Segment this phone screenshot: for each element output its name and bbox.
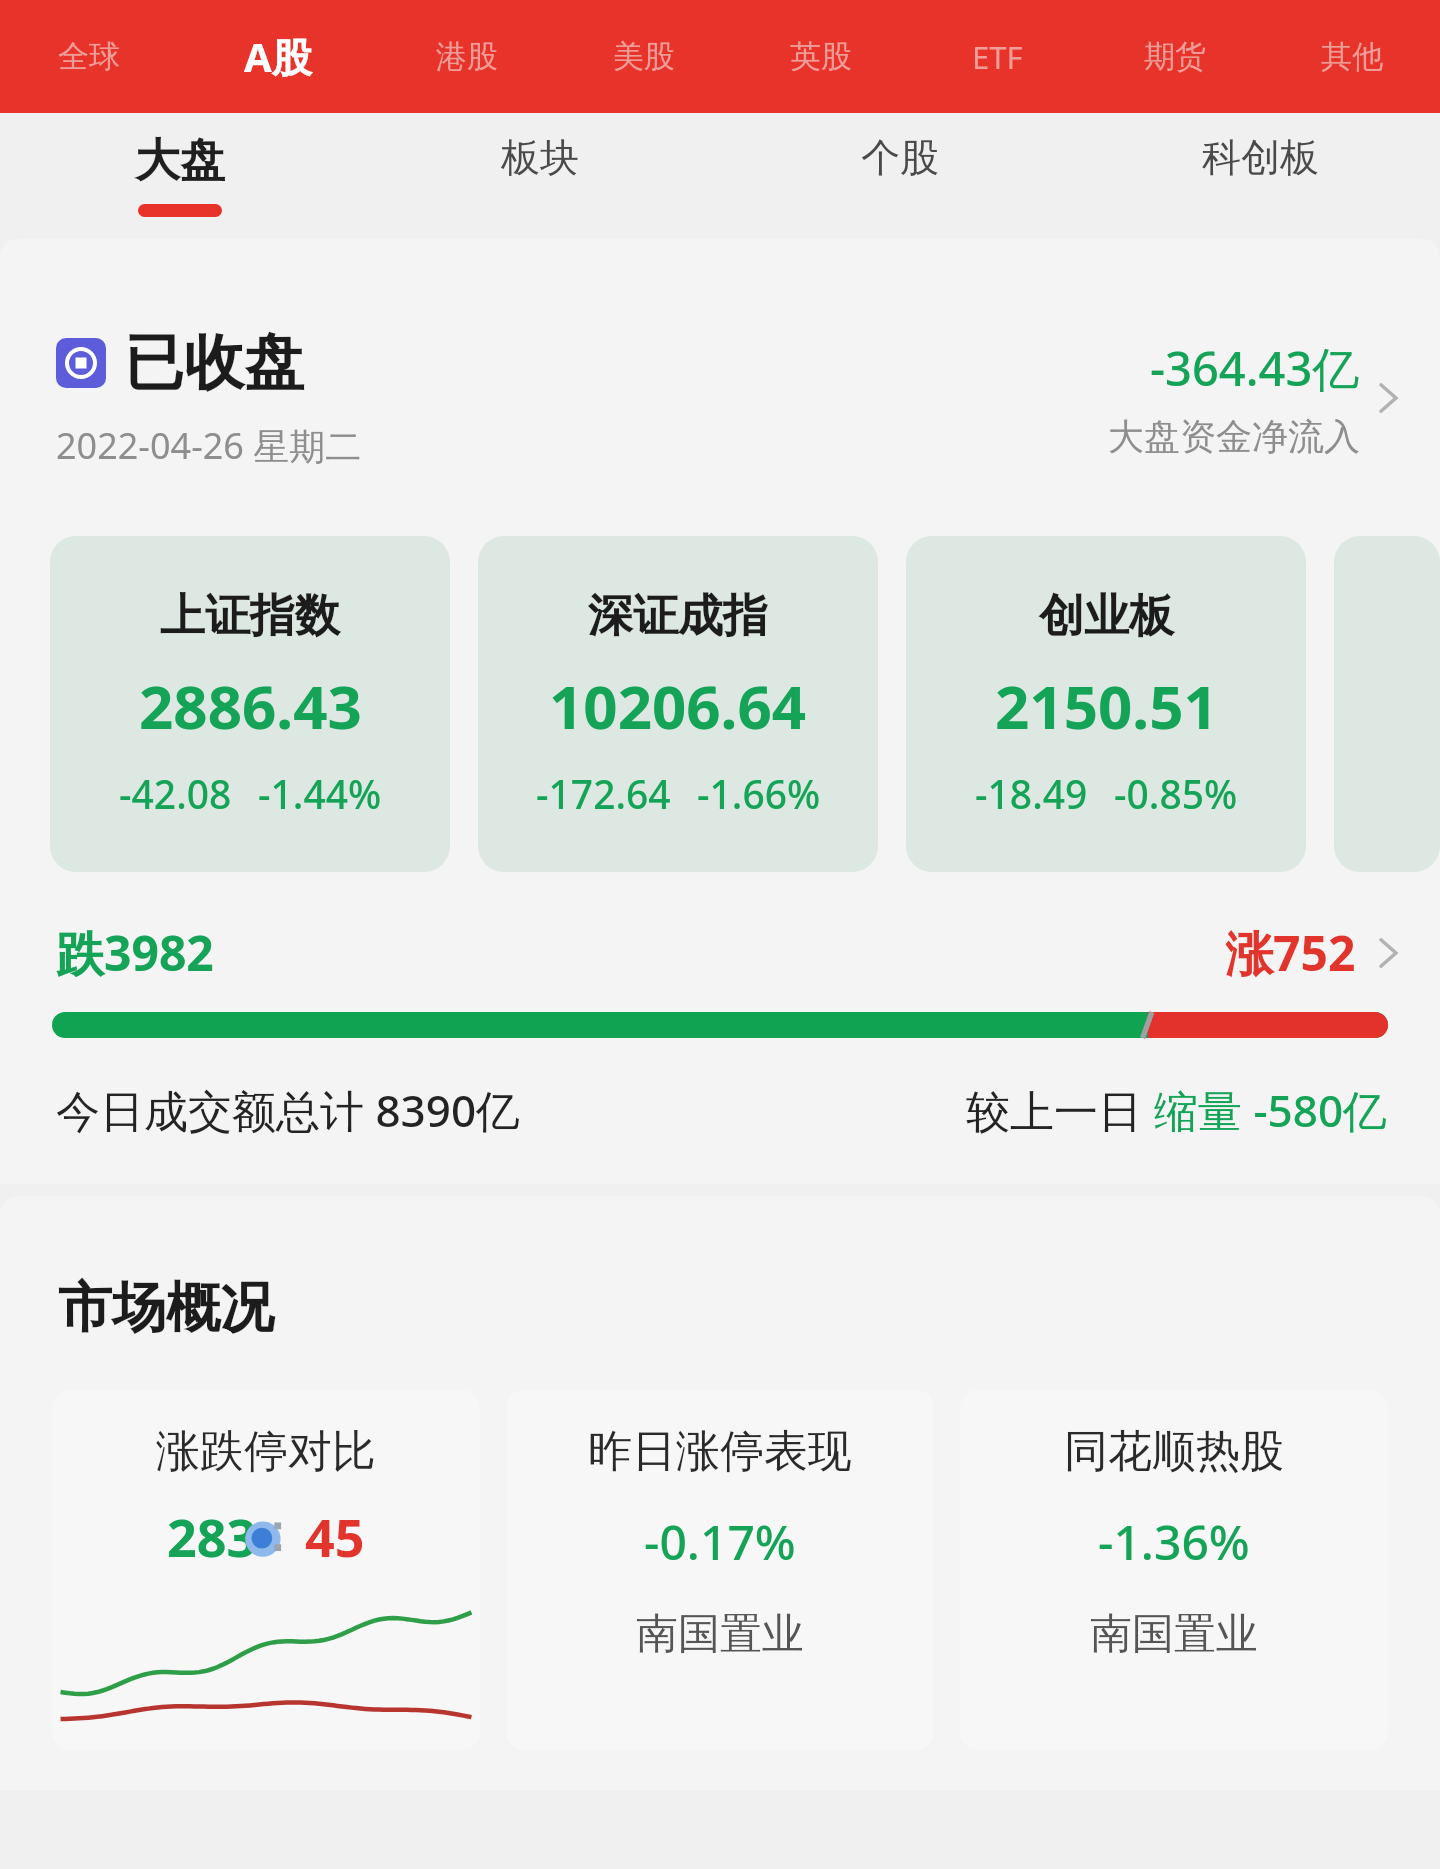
staticText: 较上一日 [966, 1080, 1154, 1140]
button[interactable]: 昨日涨停表现 [506, 1390, 934, 1750]
staticText: 英股 [790, 37, 852, 76]
staticText: 创业板 [1039, 588, 1174, 645]
staticText: 缩量 -580亿 [1154, 1080, 1388, 1140]
staticText: -0.17% [644, 1509, 796, 1574]
button[interactable]: 深证成指 [478, 536, 878, 872]
staticText: -42.08 [119, 767, 232, 820]
other: 涨跌分布详情 [1366, 931, 1410, 975]
staticText: 2150.51 [995, 665, 1218, 747]
staticText: -1.36% [1098, 1509, 1250, 1574]
button[interactable]: 同花顺热股 [960, 1390, 1388, 1750]
button[interactable]: 个股 [720, 113, 1080, 235]
button[interactable]: 科创板 [1080, 113, 1440, 235]
staticText: 南国置业 [636, 1608, 804, 1661]
staticText: 板块 [501, 133, 579, 182]
button[interactable]: 板块 [360, 113, 720, 235]
button[interactable]: 大盘 [0, 113, 360, 235]
staticText: 南国置业 [1090, 1608, 1258, 1661]
staticText: 市场概况 [58, 1274, 274, 1342]
staticText: 昨日涨停表现 [588, 1424, 852, 1479]
button[interactable]: 其他 [1263, 0, 1440, 113]
staticText: 2022-04-26 星期二 [56, 421, 362, 470]
button[interactable]: ETF [909, 0, 1086, 113]
other: 查看资金流向 [1366, 376, 1410, 420]
staticText: 港股 [436, 37, 498, 76]
staticText: 2886.43 [139, 665, 362, 747]
button[interactable]: 美股 [555, 0, 732, 113]
staticText: 大盘 [135, 133, 225, 190]
staticText: 全球 [58, 37, 120, 76]
staticText: 同花顺热股 [1064, 1424, 1284, 1479]
button[interactable]: 已收盘 [0, 325, 1440, 470]
button[interactable]: 上证指数 [50, 536, 450, 872]
staticText: 已收盘 [124, 325, 304, 401]
button[interactable]: 全球 [0, 0, 178, 113]
staticText: 大盘资金净流入 [1108, 414, 1360, 459]
staticText: 个股 [861, 133, 939, 182]
staticText: 跌3982 [56, 920, 214, 986]
button[interactable]: 创业板 [906, 536, 1306, 872]
button[interactable]: 涨跌停对比 [52, 1390, 480, 1750]
button[interactable]: 英股 [732, 0, 909, 113]
button[interactable]: 港股 [378, 0, 555, 113]
button[interactable]: 期货 [1086, 0, 1263, 113]
staticText: 涨跌停对比 [156, 1424, 376, 1479]
staticText: 45 [305, 1501, 365, 1572]
staticText: 上证指数 [160, 588, 340, 645]
staticText: -1.44% [258, 767, 382, 820]
staticText: 今日成交额总计 8390亿 [56, 1080, 521, 1140]
staticText: A股 [244, 29, 312, 84]
staticText: 科创板 [1202, 133, 1319, 182]
staticText: -1.66% [697, 767, 821, 820]
staticText: 涨752 [1225, 920, 1356, 986]
staticText: -18.49 [975, 767, 1088, 820]
button[interactable]: 跌3982 [0, 920, 1440, 986]
button[interactable]: A股 [178, 0, 378, 113]
staticText: -172.64 [536, 767, 671, 820]
staticText: -364.43亿 [1150, 336, 1360, 400]
staticText: ETF [972, 36, 1023, 78]
staticText: 10206.64 [549, 665, 807, 747]
staticText: 深证成指 [588, 588, 768, 645]
staticText: 283 [167, 1501, 257, 1572]
staticText: 期货 [1144, 37, 1206, 76]
staticText: -0.85% [1114, 767, 1238, 820]
staticText: 其他 [1321, 37, 1383, 76]
staticText: 美股 [613, 37, 675, 76]
